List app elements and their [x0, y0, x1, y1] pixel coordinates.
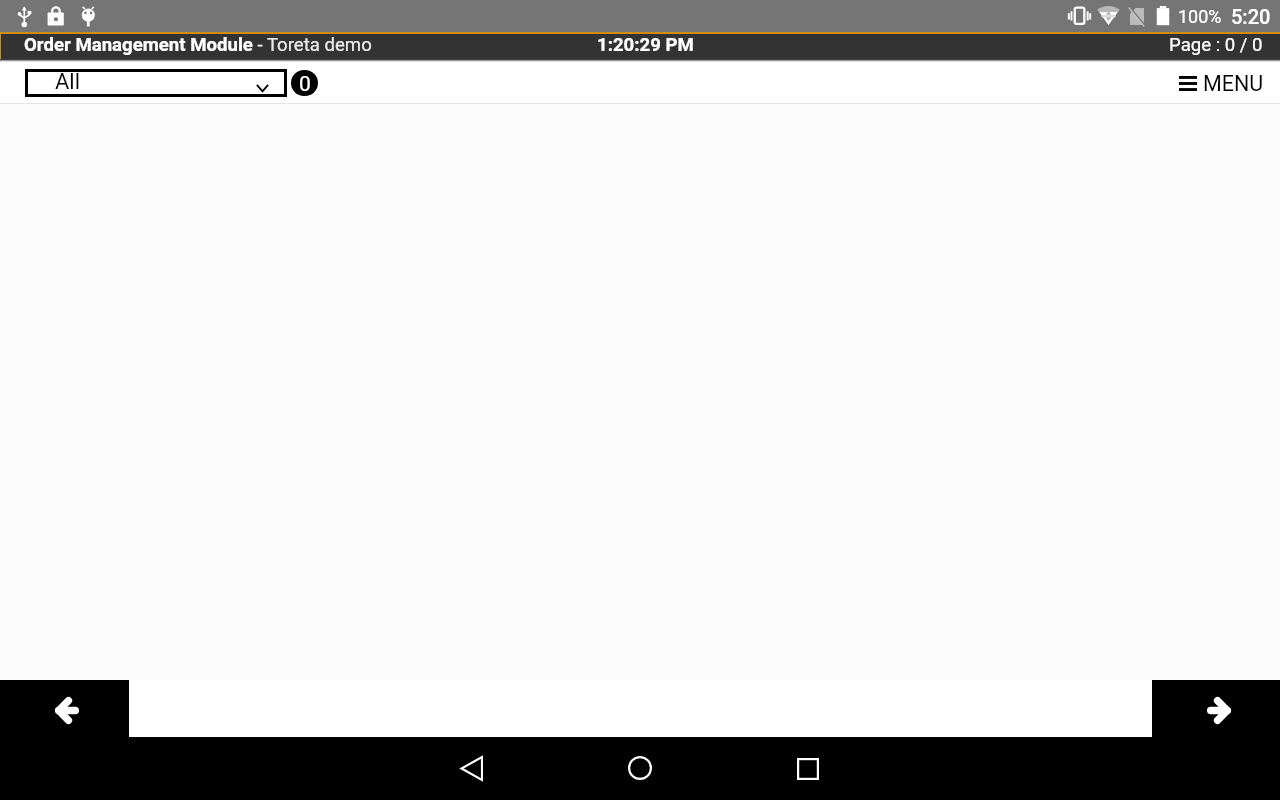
staticText: MENU [1203, 71, 1264, 96]
staticText: 1:20:29 PM [597, 34, 694, 56]
button[interactable]: MENU [1179, 68, 1264, 98]
button[interactable]: Previous page [0, 680, 129, 737]
staticText: 100% [1178, 6, 1222, 27]
button[interactable]: Home [612, 737, 668, 800]
button[interactable]: Back [444, 737, 500, 800]
staticText: All [55, 69, 81, 91]
button[interactable]: Next page [1152, 680, 1280, 737]
button[interactable]: Recent apps [781, 737, 837, 800]
button[interactable]: All [25, 69, 287, 97]
staticText: 0 [299, 72, 311, 96]
staticText: Order Management Module - Toreta demo [24, 34, 372, 56]
staticText: 5:20 [1231, 5, 1271, 28]
staticText: Page : 0 / 0 [1169, 34, 1263, 56]
button[interactable]: 0 [291, 70, 318, 96]
